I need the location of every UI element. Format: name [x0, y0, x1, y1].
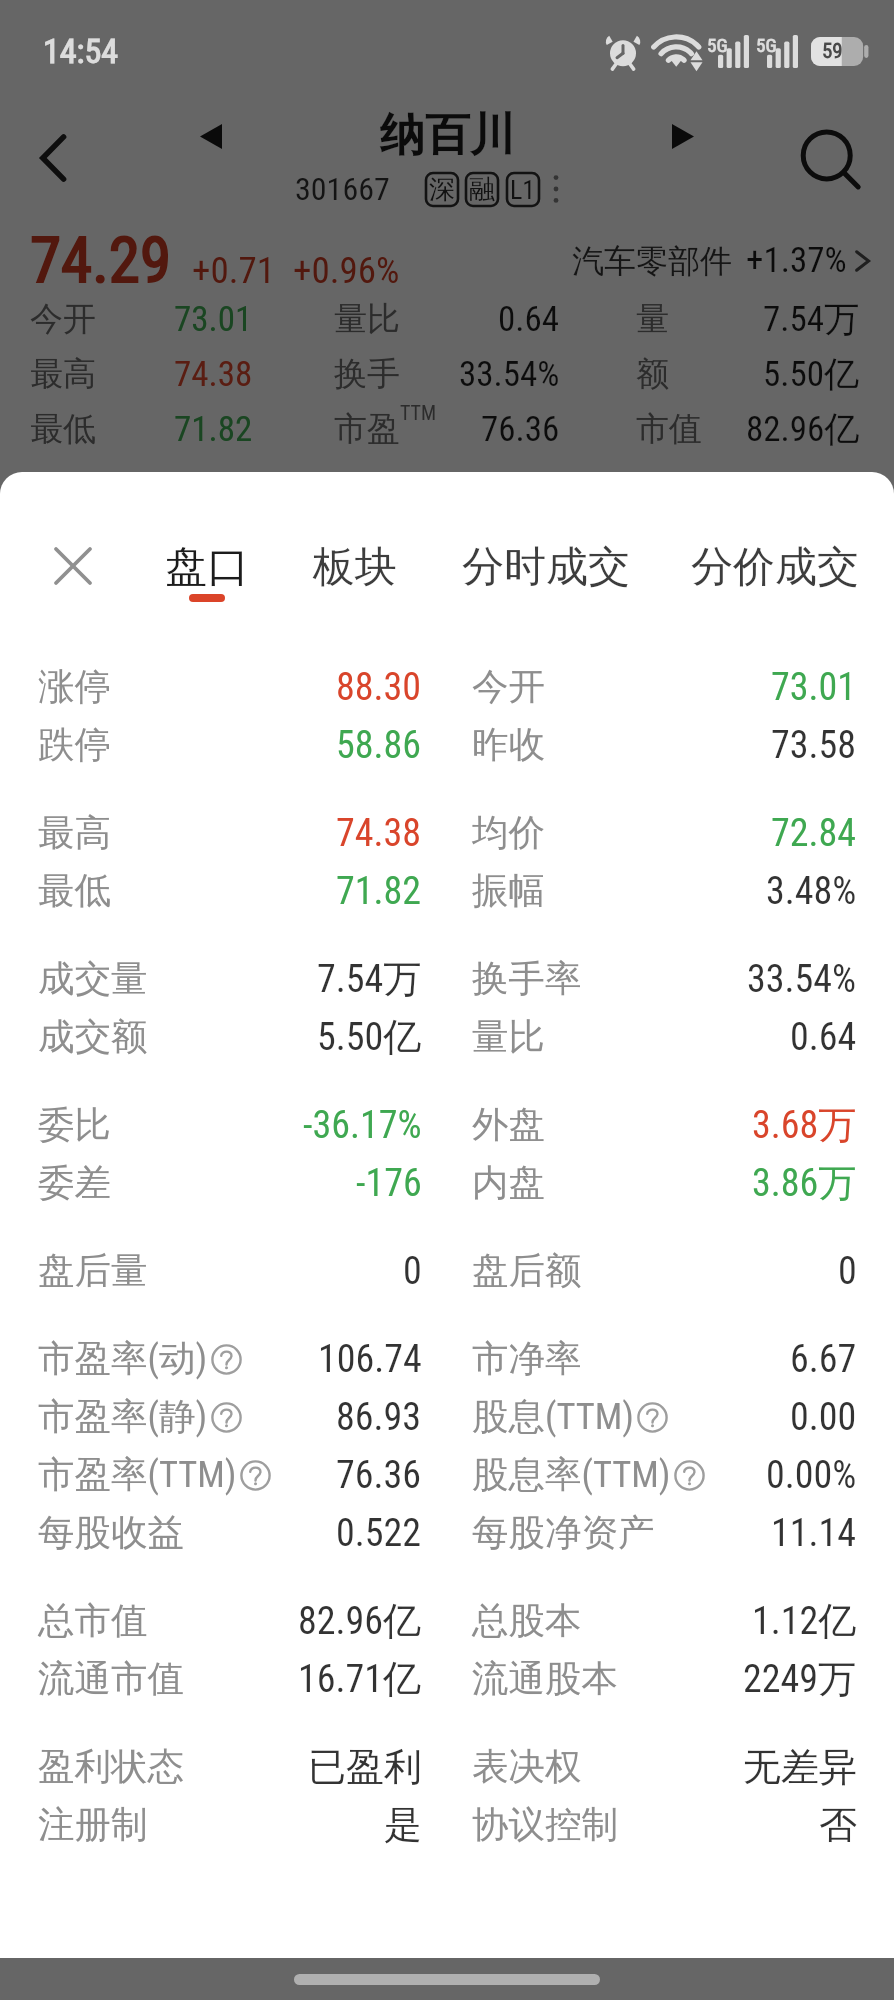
staticText: 量比 [472, 1014, 545, 1060]
staticText: 最高 [38, 810, 111, 856]
staticText: 86.93 [336, 1395, 422, 1440]
button[interactable]: 总市值 [0, 1592, 447, 1650]
staticText: 最高 [30, 353, 96, 395]
staticText: 市盈率(TTM) [38, 1452, 237, 1498]
button[interactable]: 内盘 [447, 1154, 894, 1212]
staticText: 301667 [295, 170, 390, 208]
button[interactable]: 成交量 [0, 950, 447, 1008]
button[interactable]: 协议控制 [447, 1796, 894, 1854]
staticText: 分价成交 [691, 541, 859, 594]
staticText: +0.71 [192, 249, 275, 292]
staticText: 分时成交 [462, 541, 630, 594]
button[interactable]: 市净率 [447, 1330, 894, 1388]
staticText: 盘后量 [38, 1248, 148, 1294]
staticText: 额 [636, 353, 669, 395]
button[interactable]: 市盈率(TTM) [0, 1446, 447, 1504]
button[interactable]: 换手率 [447, 950, 894, 1008]
button[interactable]: 流通股本 [447, 1650, 894, 1708]
button[interactable]: 股息(TTM) [447, 1388, 894, 1446]
staticText: 72.84 [771, 811, 857, 856]
button[interactable]: 股息率(TTM) [447, 1446, 894, 1504]
staticText: 73.58 [771, 723, 857, 768]
button[interactable]: 最低 [0, 862, 447, 920]
button[interactable]: 均价 [447, 804, 894, 862]
button[interactable]: 市盈率(静) [0, 1388, 447, 1446]
staticText: 量比 [334, 298, 400, 340]
button[interactable]: 委比 [0, 1096, 447, 1154]
button[interactable]: 盘后量 [0, 1242, 447, 1300]
staticText: 0.522 [336, 1511, 422, 1556]
staticText: 每股收益 [38, 1510, 184, 1556]
staticText: 总市值 [38, 1598, 148, 1644]
staticText: 3.68万 [752, 1101, 857, 1149]
button[interactable]: 盈利状态 [0, 1738, 447, 1796]
staticText: 7.54万 [763, 297, 860, 341]
button[interactable]: 表决权 [447, 1738, 894, 1796]
other: Search [796, 126, 860, 190]
button[interactable]: 涨停 [0, 658, 447, 716]
button[interactable]: 成交额 [0, 1008, 447, 1066]
staticText: 注册制 [38, 1802, 148, 1848]
staticText: 今开 [472, 664, 545, 710]
staticText: 内盘 [472, 1160, 545, 1206]
button[interactable]: 每股收益 [0, 1504, 447, 1562]
button[interactable]: 每股净资产 [447, 1504, 894, 1562]
button[interactable]: 总股本 [447, 1592, 894, 1650]
staticText: 流通股本 [472, 1656, 618, 1702]
staticText: +1.37% [746, 240, 847, 281]
button[interactable]: 昨收 [447, 716, 894, 774]
staticText: 汽车零部件 [572, 241, 732, 281]
button[interactable]: 分时成交 [451, 541, 641, 653]
button[interactable]: 跌停 [0, 716, 447, 774]
button[interactable]: 今开 [447, 658, 894, 716]
staticText: 11.14 [771, 1511, 857, 1556]
button[interactable]: 流通市值 [0, 1650, 447, 1708]
staticText: 0.64 [498, 299, 560, 340]
staticText: -176 [356, 1161, 422, 1206]
staticText: +0.96% [293, 249, 400, 292]
staticText: 纳百川 [380, 107, 515, 164]
staticText: 振幅 [472, 868, 545, 914]
staticText: 换手 [334, 353, 400, 395]
staticText: 最低 [38, 868, 111, 914]
staticText: 3.48% [766, 869, 857, 914]
staticText: 16.71亿 [298, 1655, 422, 1703]
button[interactable]: 分价成交 [680, 541, 870, 653]
staticText: 无差异 [743, 1743, 857, 1791]
staticText: 深 [429, 173, 455, 206]
staticText: 量 [636, 298, 669, 340]
staticText: 5.50亿 [763, 352, 860, 396]
button[interactable]: 委差 [0, 1154, 447, 1212]
staticText: 73.01 [771, 665, 857, 710]
staticText: 74.38 [336, 811, 422, 856]
staticText: 已盈利 [308, 1743, 422, 1791]
button[interactable]: 量比 [447, 1008, 894, 1066]
button[interactable]: 振幅 [447, 862, 894, 920]
staticText: 0.00 [790, 1395, 857, 1440]
button[interactable]: 盘口 [112, 541, 302, 653]
button[interactable]: Close [41, 534, 105, 598]
button[interactable]: 注册制 [0, 1796, 447, 1854]
staticText: 盘口 [165, 541, 249, 594]
staticText: 每股净资产 [472, 1510, 655, 1556]
button[interactable]: 最高 [0, 804, 447, 862]
button[interactable]: 市盈率(动) [0, 1330, 447, 1388]
button[interactable]: 盘后额 [447, 1242, 894, 1300]
staticText: 最低 [30, 408, 96, 450]
staticText: 0.00% [766, 1453, 857, 1498]
staticText: 0 [403, 1249, 422, 1294]
staticText: 3.86万 [752, 1159, 857, 1207]
staticText: 总股本 [472, 1598, 582, 1644]
staticText: 板块 [313, 541, 397, 594]
staticText: 股息率(TTM) [472, 1452, 671, 1498]
staticText: 市盈率(静) [38, 1394, 208, 1440]
staticText: 71.82 [174, 409, 253, 450]
staticText: 59 [822, 39, 843, 64]
staticText: 否 [819, 1801, 857, 1849]
staticText: 33.54% [459, 354, 560, 395]
button[interactable]: 板块 [260, 541, 450, 653]
staticText: 盈利状态 [38, 1744, 184, 1790]
button[interactable]: 外盘 [447, 1096, 894, 1154]
staticText: 股息(TTM) [472, 1394, 634, 1440]
staticText: 委比 [38, 1102, 111, 1148]
